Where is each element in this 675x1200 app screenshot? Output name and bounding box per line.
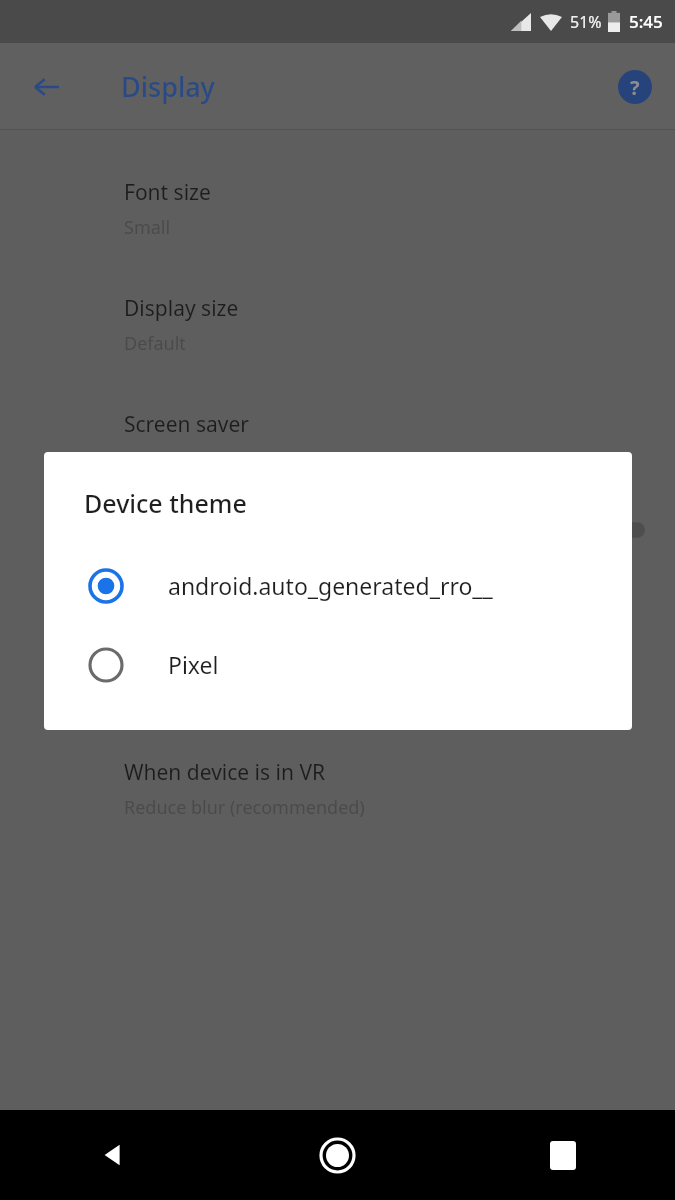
staticText: Reduce blur (recommended) bbox=[124, 795, 365, 820]
button[interactable]: When device is in VR bbox=[0, 704, 675, 820]
staticText: Wake screen when you receive notificatio… bbox=[124, 563, 492, 588]
button[interactable]: Recent apps bbox=[450, 1110, 675, 1200]
staticText: Font size bbox=[124, 178, 211, 207]
staticText: Screen saver bbox=[124, 410, 250, 439]
button[interactable]: Font size bbox=[0, 136, 675, 240]
staticText: ? bbox=[630, 74, 640, 101]
staticText: Off bbox=[124, 447, 151, 472]
staticText: Default bbox=[124, 331, 186, 356]
button[interactable]: Display size bbox=[0, 240, 675, 356]
button[interactable]: Back bbox=[22, 63, 70, 111]
button[interactable]: Home bbox=[225, 1110, 450, 1200]
staticText: When device is in VR bbox=[124, 758, 326, 787]
button[interactable]: Screen saver bbox=[0, 356, 675, 472]
staticText: Small bbox=[124, 215, 171, 240]
button[interactable]: android.auto_generated_rro__ bbox=[44, 546, 632, 625]
staticText: android.auto_generated_rro__ bbox=[168, 570, 493, 601]
button[interactable]: Back bbox=[0, 1110, 225, 1200]
staticText: Device theme bbox=[84, 486, 247, 520]
staticText: Display size bbox=[124, 294, 239, 323]
staticText: Pixel bbox=[168, 649, 219, 680]
button[interactable]: Pixel bbox=[44, 625, 632, 704]
button[interactable]: Ambient display bbox=[0, 472, 675, 588]
button[interactable]: Help bbox=[611, 63, 659, 111]
staticText: Display bbox=[121, 68, 215, 105]
button[interactable]: Device theme bbox=[0, 588, 675, 704]
staticText: Device theme bbox=[124, 642, 259, 671]
staticText: 51% bbox=[570, 11, 602, 33]
staticText: 5:45 bbox=[629, 10, 663, 33]
